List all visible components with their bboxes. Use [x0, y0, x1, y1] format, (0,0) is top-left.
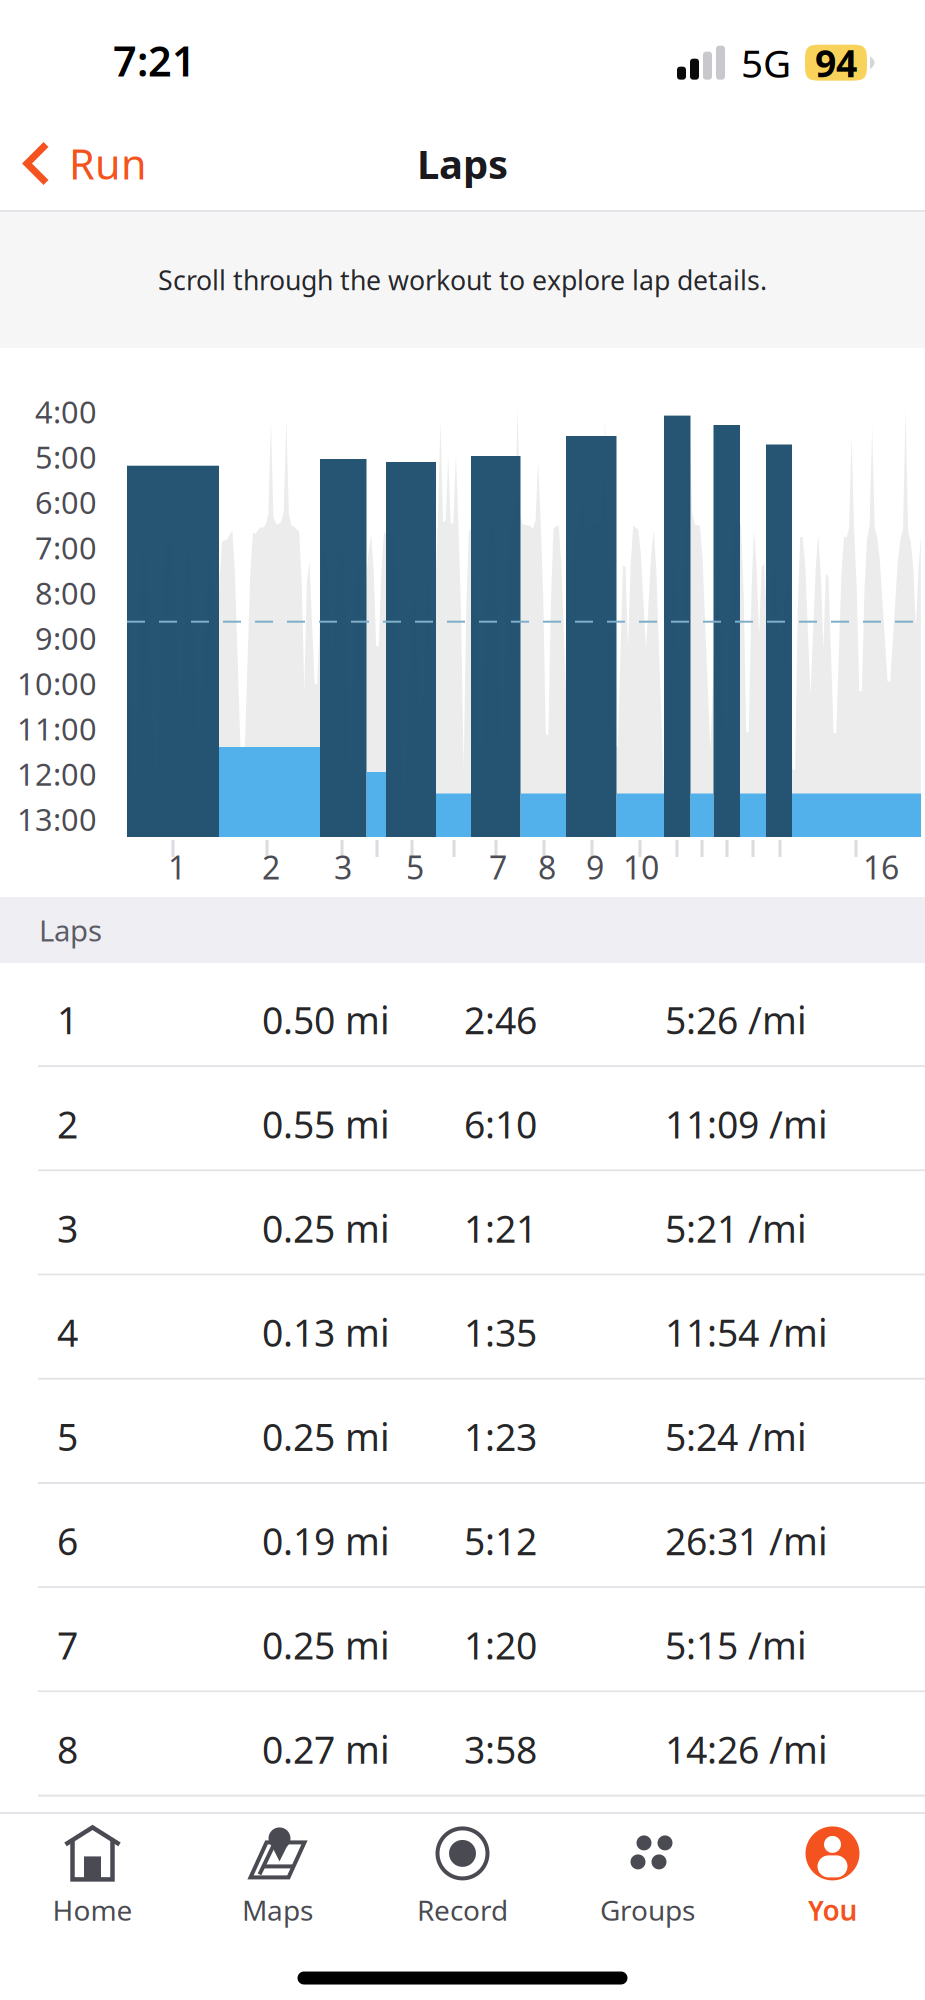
staticText: 5:00 — [35, 437, 97, 477]
staticText: 9:00 — [35, 618, 97, 658]
button[interactable]: Maps — [185, 1814, 370, 1940]
button[interactable]: Groups — [555, 1814, 740, 1940]
staticText: 2 — [262, 846, 280, 888]
staticText: Maps — [242, 1891, 313, 1929]
staticText: 1:23 — [464, 1412, 537, 1461]
staticText: 8 — [538, 846, 556, 888]
staticText: 2 — [57, 1099, 78, 1149]
staticText: 3 — [57, 1203, 78, 1253]
staticText: 2:46 — [464, 995, 537, 1045]
button[interactable]: Home — [0, 1814, 185, 1940]
staticText: 8:00 — [35, 572, 97, 613]
staticText: 9 — [586, 846, 604, 888]
staticText: 5:24 /mi — [665, 1412, 807, 1461]
staticText: 0.25 mi — [262, 1203, 390, 1253]
button[interactable]: 3 — [0, 1171, 925, 1276]
staticText: 5 — [406, 846, 424, 888]
staticText: 1:20 — [464, 1620, 537, 1670]
staticText: 94 — [815, 38, 857, 87]
staticText: 14:26 /mi — [665, 1724, 828, 1774]
staticText: 5:15 /mi — [665, 1620, 807, 1670]
staticText: 5:21 /mi — [665, 1203, 807, 1253]
staticText: 13:00 — [17, 799, 97, 839]
staticText: 7:00 — [35, 527, 97, 568]
staticText: 6 — [57, 1516, 78, 1566]
staticText: You — [807, 1891, 857, 1929]
staticText: 6:10 — [464, 1099, 537, 1149]
button[interactable]: 4 — [0, 1276, 925, 1380]
staticText: Groups — [600, 1891, 695, 1929]
button[interactable]: 2 — [0, 1067, 925, 1171]
staticText: 11:54 /mi — [665, 1308, 828, 1357]
staticText: 0.27 mi — [262, 1724, 390, 1774]
button[interactable]: 8 — [0, 1692, 925, 1797]
staticText: 3:58 — [464, 1724, 537, 1774]
button[interactable]: 5 — [0, 1380, 925, 1484]
staticText: 7 — [489, 846, 507, 888]
staticText: 11:00 — [17, 708, 97, 749]
staticText: Run — [69, 136, 147, 191]
button[interactable]: 7 — [0, 1588, 925, 1692]
button[interactable]: Run — [0, 115, 163, 212]
staticText: 1 — [168, 846, 186, 888]
button[interactable]: 1 — [0, 963, 925, 1067]
staticText: 0.25 mi — [262, 1412, 390, 1461]
staticText: 16 — [863, 846, 899, 888]
staticText: 8 — [57, 1724, 78, 1774]
staticText: 1 — [57, 995, 78, 1045]
staticText: 0.13 mi — [262, 1308, 390, 1357]
staticText: 4:00 — [35, 391, 97, 432]
staticText: 0.19 mi — [262, 1516, 390, 1566]
staticText: 1:35 — [464, 1308, 537, 1357]
staticText: Record — [417, 1891, 508, 1929]
staticText: 0.25 mi — [262, 1620, 390, 1670]
staticText: 0.50 mi — [262, 995, 390, 1045]
staticText: 3 — [334, 846, 352, 888]
staticText: 7:21 — [113, 33, 196, 88]
staticText: Home — [52, 1891, 132, 1929]
staticText: 5:26 /mi — [665, 995, 807, 1045]
staticText: 6:00 — [35, 482, 97, 523]
button[interactable]: You — [740, 1814, 925, 1940]
staticText: Laps — [417, 137, 508, 190]
staticText: 10 — [623, 846, 659, 888]
button[interactable]: Record — [370, 1814, 555, 1940]
staticText: 4 — [57, 1308, 78, 1357]
button[interactable]: 6 — [0, 1484, 925, 1588]
staticText: 26:31 /mi — [665, 1516, 828, 1566]
staticText: 5G — [741, 37, 791, 88]
staticText: 5 — [57, 1412, 78, 1461]
staticText: Laps — [39, 910, 102, 949]
staticText: 10:00 — [17, 663, 97, 704]
staticText: 5:12 — [464, 1516, 537, 1566]
staticText: 11:09 /mi — [665, 1099, 828, 1149]
staticText: 0.55 mi — [262, 1099, 390, 1149]
staticText: 12:00 — [17, 753, 97, 794]
staticText: Scroll through the workout to explore la… — [158, 262, 767, 298]
staticText: 7 — [57, 1620, 78, 1670]
staticText: 1:21 — [464, 1203, 537, 1253]
